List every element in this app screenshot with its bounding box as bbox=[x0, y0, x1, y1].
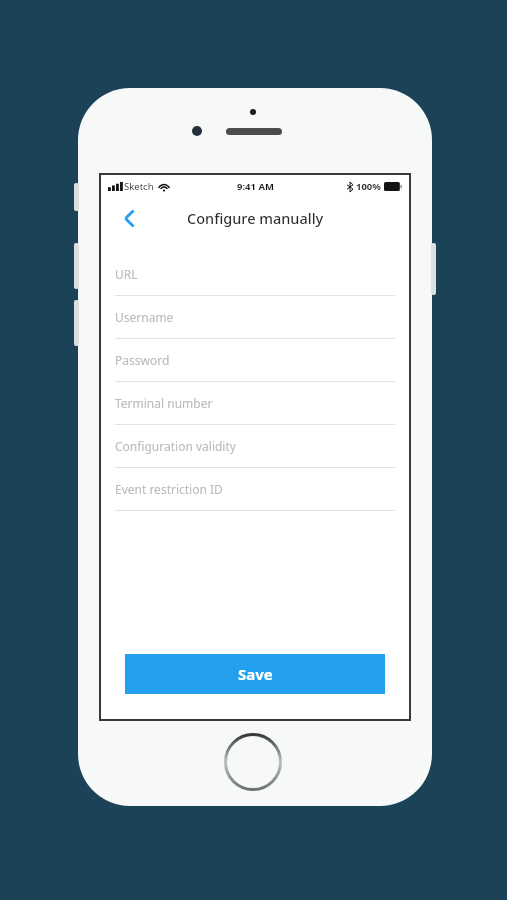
button[interactable]: Terminal number bbox=[101, 382, 409, 425]
button[interactable]: Back bbox=[113, 202, 145, 234]
staticText: Sketch bbox=[124, 180, 154, 193]
button[interactable]: URL bbox=[101, 253, 409, 296]
staticText: Username bbox=[115, 309, 174, 325]
button[interactable]: Event restriction ID bbox=[101, 468, 409, 511]
button[interactable]: Save bbox=[125, 654, 385, 694]
staticText: Save bbox=[238, 664, 273, 684]
staticText: Configure manually bbox=[187, 208, 324, 228]
staticText: 100% bbox=[356, 180, 381, 193]
staticText: 9:41 AM bbox=[237, 180, 274, 193]
staticText: URL bbox=[115, 266, 138, 282]
staticText: Terminal number bbox=[115, 395, 213, 411]
staticText: Configuration validity bbox=[115, 438, 236, 454]
button[interactable]: Username bbox=[101, 296, 409, 339]
button[interactable]: Password bbox=[101, 339, 409, 382]
staticText: Event restriction ID bbox=[115, 481, 223, 497]
button[interactable]: Configuration validity bbox=[101, 425, 409, 468]
staticText: Password bbox=[115, 352, 170, 368]
